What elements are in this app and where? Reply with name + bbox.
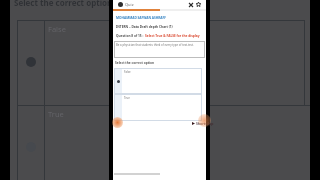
button[interactable]: Bookmark [195,1,202,8]
staticText: Question 8 of 15 : [116,34,145,38]
button[interactable]: Close [187,1,194,8]
staticText: False [124,70,131,74]
staticText: MOHAMMAD SAFWAN ASHRAFF [116,16,167,20]
staticText: Select True & FALSE for the display sele… [145,34,205,38]
staticText: Be a physician that students think of ev… [116,43,194,47]
staticText: Select the correct option [14,0,113,8]
staticText: True [48,109,64,119]
button[interactable]: True [114,94,202,121]
staticText: ShortsApp [196,121,214,126]
staticText: True [124,96,130,100]
staticText: INTERN – Data Draft depth Chart (1) [116,25,173,29]
button[interactable]: False [114,68,202,94]
staticText: Select the correct option [115,61,155,65]
staticText: False [48,24,66,34]
staticText: Quiz [125,2,134,7]
